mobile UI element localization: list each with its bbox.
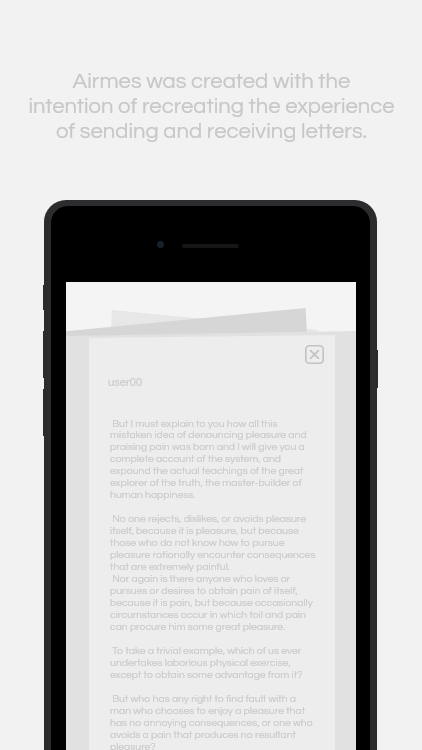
- staticText: But I must explain to you how all this m…: [110, 418, 319, 750]
- button[interactable]: Close: [305, 345, 324, 364]
- staticText: Airmes was created with the intention of…: [28, 70, 395, 143]
- staticText: user00: [108, 377, 143, 389]
